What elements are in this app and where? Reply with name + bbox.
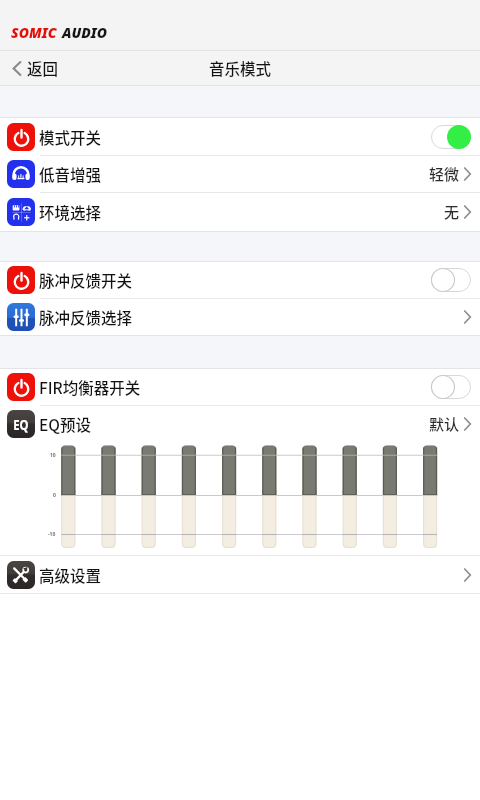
staticText: 脉冲反馈开关	[39, 269, 133, 291]
staticText: EQ预设	[39, 413, 91, 435]
button[interactable]: Switch off	[431, 268, 471, 292]
button[interactable]: 模式开关	[0, 118, 480, 155]
button[interactable]: 高级设置	[0, 556, 480, 593]
staticText: 低音增强	[39, 163, 102, 185]
staticText: 返回	[27, 57, 59, 79]
button[interactable]: 低音增强	[0, 156, 480, 192]
staticText: 环境选择	[39, 201, 102, 223]
staticText: FIR均衡器开关	[39, 376, 141, 398]
button[interactable]: Switch on	[431, 125, 471, 149]
button[interactable]: 环境选择	[0, 193, 480, 231]
staticText: 默认	[429, 413, 460, 435]
button[interactable]: FIR均衡器开关	[0, 369, 480, 405]
button[interactable]: 脉冲反馈选择	[0, 299, 480, 335]
button[interactable]: 脉冲反馈开关	[0, 262, 480, 298]
button[interactable]: Switch off	[431, 375, 471, 399]
button[interactable]: EQ	[0, 406, 480, 441]
staticText: 高级设置	[39, 564, 102, 586]
staticText: 无	[444, 201, 460, 223]
staticText: -10	[48, 531, 56, 538]
staticText: 0	[53, 492, 56, 499]
button[interactable]: 返回	[0, 53, 69, 83]
staticText: SOMIC	[11, 23, 57, 42]
staticText: 模式开关	[39, 126, 102, 148]
staticText: 脉冲反馈选择	[39, 306, 133, 328]
staticText: 10	[50, 452, 56, 459]
staticText: AUDIO	[62, 23, 108, 42]
staticText: EQ	[13, 414, 29, 434]
staticText: 音乐模式	[209, 57, 272, 79]
staticText: 轻微	[429, 163, 460, 185]
